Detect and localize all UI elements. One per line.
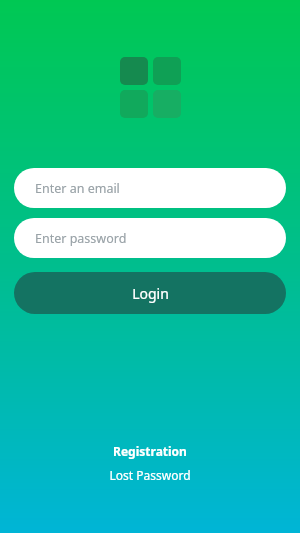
staticText: Enter password <box>35 230 127 247</box>
button[interactable]: Registration <box>99 440 201 462</box>
button[interactable]: Enter password <box>14 218 286 258</box>
button[interactable]: Login <box>14 272 286 314</box>
staticText: Enter an email <box>35 180 120 197</box>
button[interactable]: Lost Password <box>95 464 205 486</box>
staticText: Login <box>132 284 169 303</box>
button[interactable]: Enter an email <box>14 168 286 208</box>
staticText: Lost Password <box>109 467 191 483</box>
staticText: Registration <box>113 443 187 459</box>
